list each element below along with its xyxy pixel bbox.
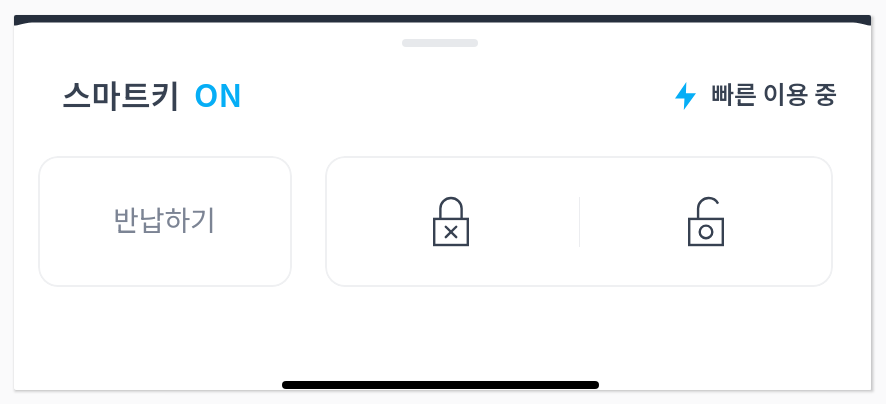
staticText: ON <box>194 70 243 116</box>
staticText: 반납하기 <box>113 199 217 240</box>
staticText: 빠른 이용 중 <box>711 75 838 111</box>
button[interactable]: Lock the vehicle <box>325 156 578 287</box>
staticText: 스마트키 <box>62 71 180 117</box>
button[interactable]: Unlock the vehicle <box>579 156 833 287</box>
button[interactable]: 반납하기 <box>38 156 292 287</box>
other: Fast usage <box>675 82 696 110</box>
